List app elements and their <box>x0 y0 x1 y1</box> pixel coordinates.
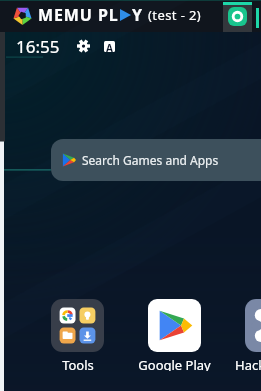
staticText: Hacker's K… <box>235 356 261 371</box>
button[interactable]: Tools <box>29 299 126 371</box>
button[interactable]: Emulator instance tab <box>223 2 252 32</box>
button[interactable]: Google Play <box>126 299 223 371</box>
staticText: MEMU PL <box>38 4 119 26</box>
staticText: Y <box>132 4 143 26</box>
button[interactable]: Hacker's K… <box>223 299 261 371</box>
staticText: 16:55 <box>16 35 60 58</box>
staticText: A <box>106 41 113 52</box>
staticText: Google Play <box>138 356 211 371</box>
staticText: Search Games and Apps <box>82 152 219 168</box>
staticText: (test - 2) <box>148 6 202 24</box>
staticText: Tools <box>62 356 94 371</box>
button[interactable]: Search Games and Apps <box>51 139 261 181</box>
